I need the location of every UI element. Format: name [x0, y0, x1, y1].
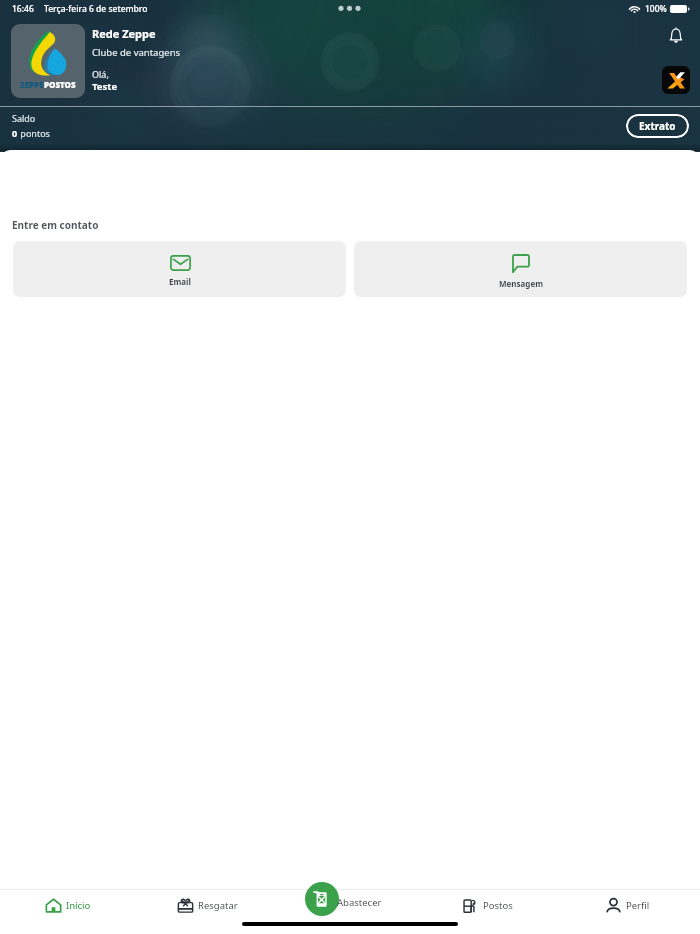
button[interactable]: Extrato [626, 114, 689, 138]
button[interactable]: Início [45, 888, 91, 922]
staticText: pontos [18, 127, 50, 139]
staticText: Rede Zeppe [92, 26, 156, 41]
staticText: Saldo [12, 112, 36, 124]
staticText: 0 [12, 127, 18, 139]
staticText: 100% [645, 3, 667, 15]
staticText: Perfil [626, 899, 650, 912]
staticText: ZEPPE [20, 79, 44, 90]
button[interactable]: Parceiro X [662, 66, 690, 94]
button[interactable]: Abastecer [337, 896, 382, 909]
staticText: Início [66, 899, 91, 912]
button[interactable]: Resgatar [177, 888, 238, 922]
button[interactable]: Mensagem [354, 241, 687, 297]
staticText: Entre em contato [12, 218, 99, 232]
staticText: Olá, [92, 68, 109, 80]
button[interactable]: Email [13, 241, 346, 297]
staticText: Teste [92, 80, 118, 93]
staticText: 16:46 [12, 3, 34, 15]
staticText: Terça-feira 6 de setembro [44, 3, 148, 15]
button[interactable]: Abastecer [305, 882, 339, 916]
button[interactable]: Postos [462, 888, 513, 922]
staticText: Email [169, 276, 191, 287]
staticText: Mensagem [499, 278, 543, 289]
staticText: Resgatar [198, 899, 238, 912]
staticText: Extrato [639, 119, 676, 133]
staticText: Clube de vantagens [92, 46, 181, 59]
staticText: POSTOS [44, 79, 76, 90]
staticText: Postos [483, 899, 513, 912]
button[interactable]: Perfil [605, 888, 650, 922]
button[interactable]: Notificações [664, 24, 688, 48]
